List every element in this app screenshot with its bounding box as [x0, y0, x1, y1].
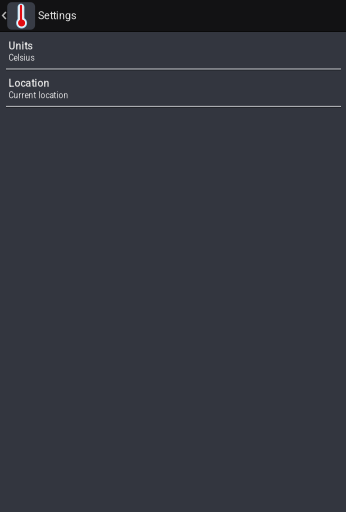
staticText: Units: [8, 40, 32, 52]
button[interactable]: Units: [0, 32, 346, 69]
staticText: Celsius: [8, 53, 34, 63]
button[interactable]: Back: [0, 0, 35, 31]
staticText: Location: [8, 77, 49, 89]
staticText: Current location: [8, 90, 68, 100]
button[interactable]: Location: [0, 69, 346, 107]
staticText: Settings: [38, 9, 77, 22]
